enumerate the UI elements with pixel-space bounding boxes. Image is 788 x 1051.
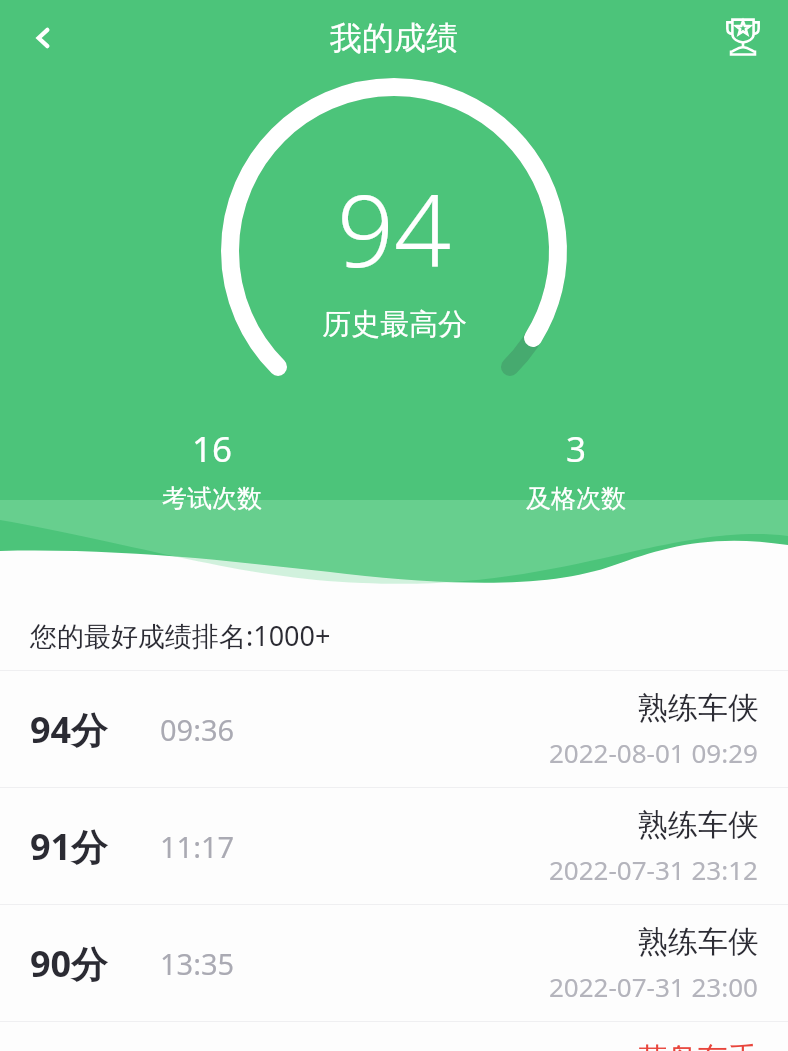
staticText: 3 — [566, 425, 587, 473]
staticText: 菜鸟车手 — [638, 1040, 758, 1051]
staticText: 历史最高分 — [322, 306, 467, 343]
staticText: 16 — [192, 425, 233, 473]
staticText: 您的最好成绩排名:1000+ — [30, 617, 331, 654]
button[interactable]: 3 — [394, 425, 758, 514]
staticText: 2022-07-31 23:00 — [549, 969, 758, 1004]
button[interactable]: 90分 — [0, 905, 788, 1021]
button[interactable]: 排行榜 — [712, 7, 774, 69]
button[interactable]: 菜鸟车手 — [0, 1022, 788, 1051]
staticText: 熟练车侠 — [638, 923, 758, 961]
staticText: 13:35 — [160, 944, 235, 983]
staticText: 熟练车侠 — [638, 806, 758, 844]
staticText: 09:36 — [160, 710, 235, 749]
button[interactable]: 91分 — [0, 788, 788, 904]
staticText: 2022-07-31 23:12 — [549, 852, 758, 887]
staticText: 94 — [337, 160, 452, 296]
staticText: 2022-08-01 09:29 — [549, 735, 758, 770]
staticText: 我的成绩 — [330, 18, 458, 58]
staticText: 94分 — [30, 705, 108, 754]
button[interactable]: 16 — [30, 425, 394, 514]
staticText: 熟练车侠 — [638, 689, 758, 727]
staticText: 11:17 — [160, 827, 235, 866]
staticText: 考试次数 — [162, 483, 262, 514]
button[interactable]: 94分 — [0, 671, 788, 787]
staticText: 91分 — [30, 822, 108, 871]
staticText: 及格次数 — [526, 483, 626, 514]
button[interactable]: 返回 — [14, 8, 74, 68]
staticText: 90分 — [30, 939, 108, 988]
